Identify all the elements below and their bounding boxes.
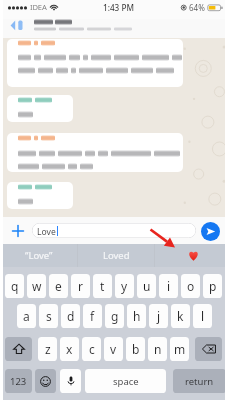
button[interactable]: [7, 95, 73, 122]
button[interactable]: m: [170, 337, 189, 361]
button[interactable]: z: [38, 337, 57, 361]
staticText: m: [174, 341, 186, 357]
staticText: u: [143, 278, 151, 294]
button[interactable]: y: [115, 274, 134, 298]
staticText: space: [113, 375, 139, 388]
staticText: g: [111, 308, 119, 324]
staticText: “Love”: [25, 249, 53, 262]
button[interactable]: [7, 182, 73, 209]
staticText: f: [90, 308, 95, 324]
staticText: l: [201, 308, 205, 324]
staticText: p: [209, 278, 217, 294]
button[interactable]: r: [71, 274, 90, 298]
staticText: s: [46, 308, 52, 324]
button[interactable]: Back: [7, 19, 29, 38]
staticText: i: [167, 278, 171, 294]
button[interactable]: Attach: [11, 224, 25, 238]
staticText: h: [133, 308, 141, 324]
staticText: o: [187, 278, 195, 294]
button[interactable]: return: [173, 369, 226, 393]
staticText: q: [11, 278, 19, 294]
staticText: 123: [10, 375, 27, 388]
button[interactable]: h: [127, 304, 146, 328]
staticText: e: [55, 278, 62, 294]
staticText: t: [100, 278, 105, 294]
staticText: d: [67, 308, 75, 324]
button[interactable]: a: [17, 304, 36, 328]
button[interactable]: l: [193, 304, 212, 328]
button[interactable]: f: [83, 304, 102, 328]
button[interactable]: space: [85, 369, 166, 393]
button[interactable]: j: [149, 304, 168, 328]
button[interactable]: v: [104, 337, 123, 361]
button[interactable]: Dictate: [60, 369, 81, 393]
staticText: Love: [37, 226, 56, 238]
staticText: k: [177, 308, 184, 324]
button[interactable]: w: [27, 274, 46, 298]
button[interactable]: u: [137, 274, 156, 298]
staticText: b: [132, 341, 140, 357]
staticText: z: [45, 341, 51, 357]
button[interactable]: [7, 39, 183, 87]
button[interactable]: c: [82, 337, 101, 361]
staticText: 1:43 PM: [103, 2, 134, 13]
button[interactable]: “Love”: [0, 244, 77, 267]
staticText: return: [185, 375, 214, 388]
button[interactable]: t: [93, 274, 112, 298]
staticText: a: [23, 308, 30, 324]
button[interactable]: Heart emoji: [155, 244, 231, 267]
button[interactable]: Loved: [78, 244, 154, 267]
button[interactable]: b: [126, 337, 145, 361]
button[interactable]: Shift: [5, 337, 32, 361]
button[interactable]: s: [39, 304, 58, 328]
staticText: IDEA: [30, 2, 47, 12]
button[interactable]: Delete: [195, 337, 222, 361]
staticText: x: [66, 341, 73, 357]
button[interactable]: Love: [32, 223, 196, 238]
staticText: y: [121, 278, 128, 294]
button[interactable]: d: [61, 304, 80, 328]
staticText: n: [154, 341, 162, 357]
button[interactable]: 123: [5, 369, 32, 393]
staticText: w: [32, 278, 42, 294]
staticText: Loved: [103, 249, 130, 262]
button[interactable]: o: [181, 274, 200, 298]
button[interactable]: n: [148, 337, 167, 361]
button[interactable]: [34, 19, 132, 31]
button[interactable]: x: [60, 337, 79, 361]
button[interactable]: e: [49, 274, 68, 298]
button[interactable]: i: [159, 274, 178, 298]
staticText: r: [78, 278, 83, 294]
button[interactable]: p: [203, 274, 222, 298]
button[interactable]: Emoji: [35, 369, 56, 393]
button[interactable]: Send: [201, 222, 220, 241]
staticText: j: [157, 308, 161, 324]
button[interactable]: g: [105, 304, 124, 328]
staticText: v: [110, 341, 117, 357]
staticText: 64%: [189, 2, 205, 13]
staticText: c: [89, 341, 95, 357]
button[interactable]: k: [171, 304, 190, 328]
button[interactable]: q: [5, 274, 24, 298]
button[interactable]: [7, 133, 183, 172]
